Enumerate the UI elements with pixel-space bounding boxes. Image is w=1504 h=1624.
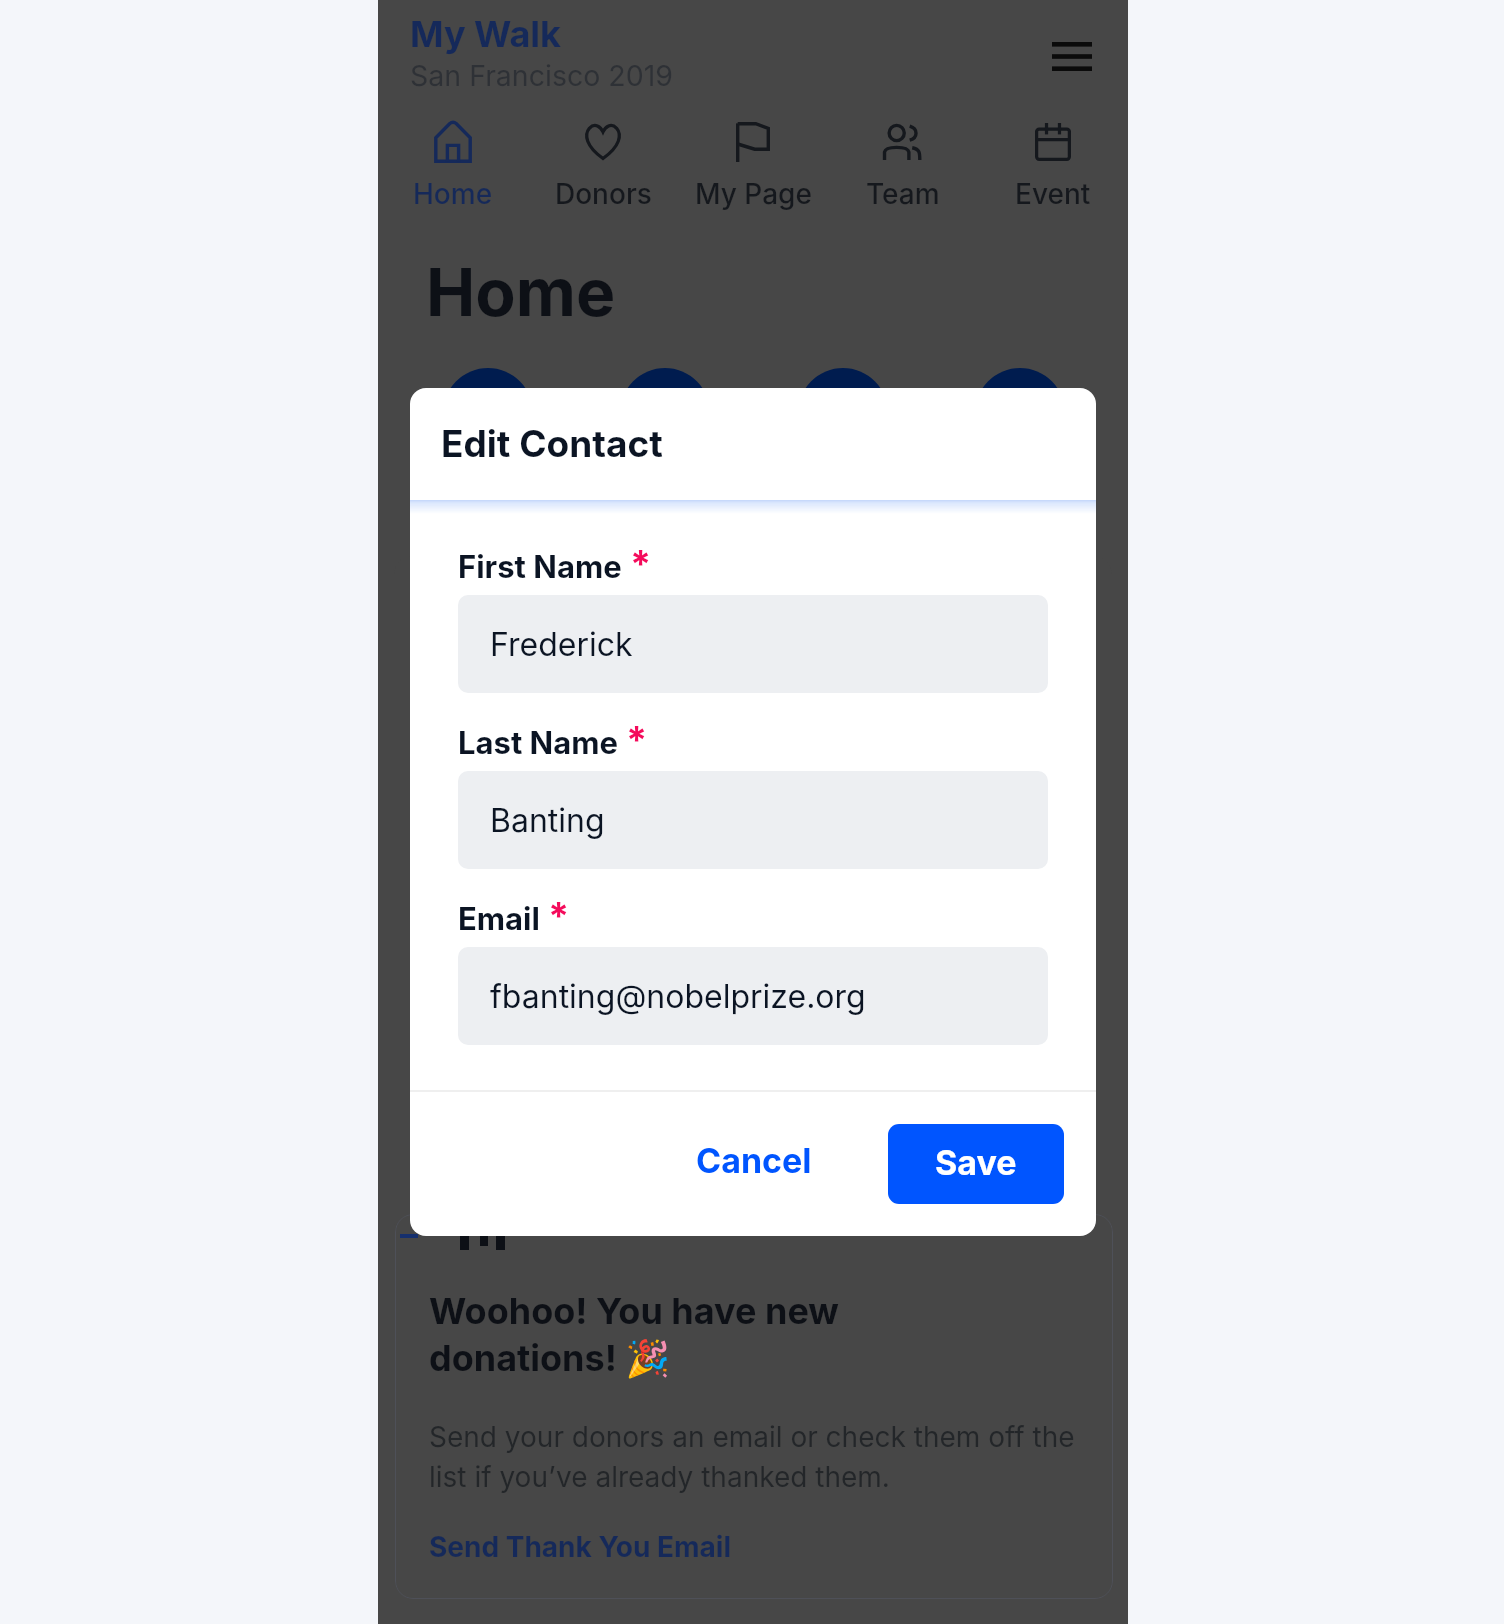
button[interactable]: My Page xyxy=(678,118,828,211)
button[interactable]: Frederick xyxy=(458,595,1048,693)
staticText: Team xyxy=(866,177,940,211)
staticText: Save xyxy=(935,1142,1017,1183)
staticText: Banting xyxy=(490,801,605,840)
button[interactable]: Menu xyxy=(1040,28,1096,80)
button[interactable]: Send Thank You Email xyxy=(429,1530,732,1564)
button[interactable]: Team xyxy=(828,118,978,211)
button[interactable]: Team member xyxy=(975,368,1065,458)
staticText: * xyxy=(630,541,652,587)
staticText: Send Thank You Email xyxy=(429,1530,732,1564)
staticText: Woohoo! You have new donations! 🎉 xyxy=(429,1289,839,1380)
staticText: * xyxy=(626,717,648,763)
staticText: Last Name xyxy=(458,724,618,762)
staticText: Edit Contact xyxy=(441,421,663,466)
staticText: Send your donors an email or check them … xyxy=(429,1420,1075,1494)
button[interactable]: Team member xyxy=(443,368,533,458)
staticText: fbanting@nobelprize.org xyxy=(490,977,866,1016)
staticText: Frederick xyxy=(490,625,633,664)
button[interactable]: Save xyxy=(888,1124,1064,1204)
staticText: My Walk xyxy=(410,12,561,56)
button[interactable]: Event xyxy=(978,118,1128,211)
button[interactable]: Team member xyxy=(620,368,710,458)
button[interactable]: Banting xyxy=(458,771,1048,869)
staticText: Home xyxy=(413,177,493,211)
staticText: First Name xyxy=(458,548,622,586)
staticText: Email xyxy=(458,900,540,938)
staticText: Cancel xyxy=(696,1140,812,1181)
button[interactable]: Donors xyxy=(528,118,678,211)
staticText: Donors xyxy=(555,177,652,211)
staticText: Event xyxy=(1015,177,1091,211)
button[interactable]: Team member xyxy=(798,368,888,458)
button[interactable]: Home xyxy=(378,118,528,211)
staticText: My Page xyxy=(695,177,812,211)
button[interactable]: fbanting@nobelprize.org xyxy=(458,947,1048,1045)
button[interactable]: Cancel xyxy=(664,1116,844,1204)
staticText: * xyxy=(548,893,570,939)
staticText: Home xyxy=(426,252,616,332)
staticText: San Francisco 2019 xyxy=(410,58,673,92)
